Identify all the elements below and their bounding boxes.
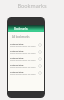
button[interactable]: Open bookmark [38,43,42,47]
button[interactable]: Article title [8,41,44,48]
button[interactable]: Open bookmark [38,50,42,54]
button[interactable]: Bookmarks [8,25,44,32]
staticText: lorem ipsum dolor sit amet [10,59,36,62]
button[interactable]: Article title [8,55,44,62]
staticText: lorem ipsum dolor sit amet [10,66,36,69]
staticText: Article title [10,49,24,52]
staticText: Article title [10,56,24,59]
staticText: Bookmarks [14,27,28,31]
button[interactable]: Open bookmark [38,64,42,68]
button[interactable]: Article title [8,62,44,69]
staticText: Article title [10,70,24,73]
button[interactable]: Open bookmark [38,71,42,75]
staticText: Bookmarks [0,2,64,9]
button[interactable]: Open bookmark [38,57,42,61]
staticText: Article title [10,63,24,66]
staticText: All bookmarks [12,35,30,39]
staticText: Article title [10,42,24,45]
button[interactable]: Article title [8,48,44,55]
button[interactable]: Article title [8,69,44,76]
staticText: lorem ipsum dolor sit amet [10,45,36,48]
staticText: lorem ipsum dolor sit amet [10,73,36,76]
staticText: lorem ipsum dolor sit amet [10,52,36,55]
